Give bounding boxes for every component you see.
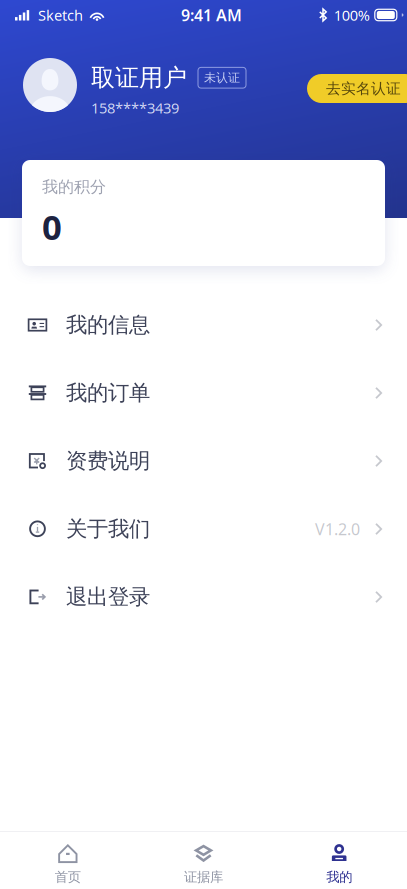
staticText: 100%: [334, 5, 370, 25]
staticText: 我的订单: [66, 380, 150, 406]
staticText: 去实名认证: [326, 79, 401, 97]
staticText: V1.2.0: [315, 518, 360, 540]
staticText: 9:41 AM: [181, 4, 242, 26]
button[interactable]: 资费说明: [0, 427, 407, 495]
button[interactable]: 我的信息: [0, 291, 407, 359]
button[interactable]: 去实名认证: [307, 74, 407, 103]
button[interactable]: 首页: [0, 832, 136, 889]
staticText: 首页: [55, 869, 81, 885]
button[interactable]: 退出登录: [0, 563, 407, 631]
staticText: 取证用户: [91, 63, 187, 92]
staticText: 退出登录: [66, 584, 150, 610]
button[interactable]: 我的订单: [0, 359, 407, 427]
button[interactable]: 我的: [271, 832, 407, 889]
button[interactable]: 证据库: [136, 832, 271, 889]
staticText: 关于我们: [66, 516, 150, 542]
staticText: 我的信息: [66, 312, 150, 338]
staticText: 未认证: [204, 70, 240, 85]
button[interactable]: 关于我们: [0, 495, 407, 563]
staticText: 158****3439: [91, 98, 179, 117]
staticText: 我的: [326, 869, 352, 885]
staticText: Sketch: [38, 5, 83, 25]
staticText: 资费说明: [66, 448, 150, 474]
staticText: 证据库: [184, 869, 223, 885]
staticText: 我的积分: [42, 177, 106, 197]
staticText: 0: [42, 204, 62, 250]
